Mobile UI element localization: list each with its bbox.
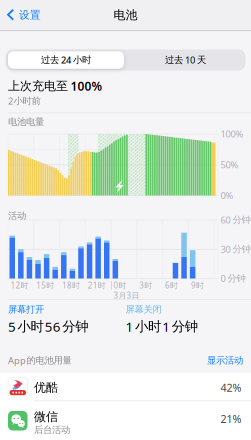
staticText: 6	[165, 280, 170, 291]
staticText: 0	[114, 280, 119, 291]
button[interactable]: 设置	[7, 0, 41, 30]
staticText: 分钟	[227, 273, 245, 284]
staticText: 时	[144, 281, 152, 290]
staticText: 时	[46, 281, 54, 290]
staticText: 后台活动	[34, 424, 70, 436]
staticText: 小时	[73, 54, 91, 66]
staticText: 过去	[41, 54, 59, 66]
button[interactable]: 过去	[127, 51, 243, 69]
staticText: 优酷	[34, 380, 58, 395]
staticText: 活动	[8, 210, 26, 222]
staticText: 日	[132, 291, 140, 300]
staticText: 30	[220, 243, 230, 255]
staticText: 的电池用量	[26, 355, 71, 366]
staticText: App	[8, 354, 26, 367]
staticText: 3	[139, 280, 144, 291]
staticText: 18	[62, 280, 72, 291]
staticText: 设置	[19, 8, 41, 21]
staticText: 天	[197, 54, 206, 66]
staticText: 0	[220, 272, 225, 285]
staticText: 15	[36, 280, 46, 291]
staticText: 9	[191, 280, 196, 291]
staticText: 小时	[17, 318, 43, 335]
staticText: 12	[10, 280, 20, 291]
staticText: 1	[125, 318, 133, 335]
staticText: 21	[88, 280, 98, 291]
staticText: 5	[8, 318, 16, 335]
staticText: 24	[61, 54, 71, 66]
staticText: 时	[196, 281, 204, 290]
staticText: 1	[162, 318, 170, 335]
button[interactable]: 微信	[0, 401, 251, 440]
staticText: 分钟	[232, 214, 250, 226]
staticText: 小时前	[13, 95, 40, 107]
staticText: 42%	[220, 380, 241, 395]
staticText: 时	[170, 281, 178, 290]
staticText: 电池	[113, 8, 137, 22]
staticText: 小时	[135, 318, 161, 335]
staticText: 60	[220, 214, 230, 226]
button[interactable]: 优酷	[0, 373, 251, 401]
staticText: 时	[119, 281, 127, 290]
staticText: 3	[114, 290, 119, 301]
staticText: 21%	[220, 412, 241, 426]
staticText: 月	[119, 291, 127, 300]
staticText: 100%	[70, 78, 102, 94]
staticText: 上次充电至	[8, 79, 68, 93]
staticText: 10	[185, 54, 195, 66]
staticText: 屏幕打开	[8, 304, 44, 315]
staticText: 56	[45, 318, 61, 335]
staticText: 屏幕关闭	[125, 304, 161, 315]
staticText: 电池电量	[8, 116, 44, 128]
staticText: 100%	[220, 128, 243, 140]
staticText: 时	[98, 281, 106, 290]
staticText: 50%	[220, 159, 238, 171]
staticText: 时	[20, 281, 28, 290]
button[interactable]: 显示活动	[0, 0, 243, 20]
staticText: 过去	[165, 54, 183, 66]
staticText: 分钟	[232, 243, 250, 255]
staticText: 3	[127, 290, 132, 301]
staticText: 分钟	[172, 318, 198, 335]
button[interactable]: 过去	[8, 51, 124, 69]
staticText: 显示活动	[207, 355, 243, 366]
staticText: 微信	[34, 409, 58, 424]
staticText: 2	[8, 95, 13, 107]
staticText: 时	[72, 281, 80, 290]
staticText: 0%	[220, 189, 233, 202]
staticText: 分钟	[62, 318, 88, 335]
